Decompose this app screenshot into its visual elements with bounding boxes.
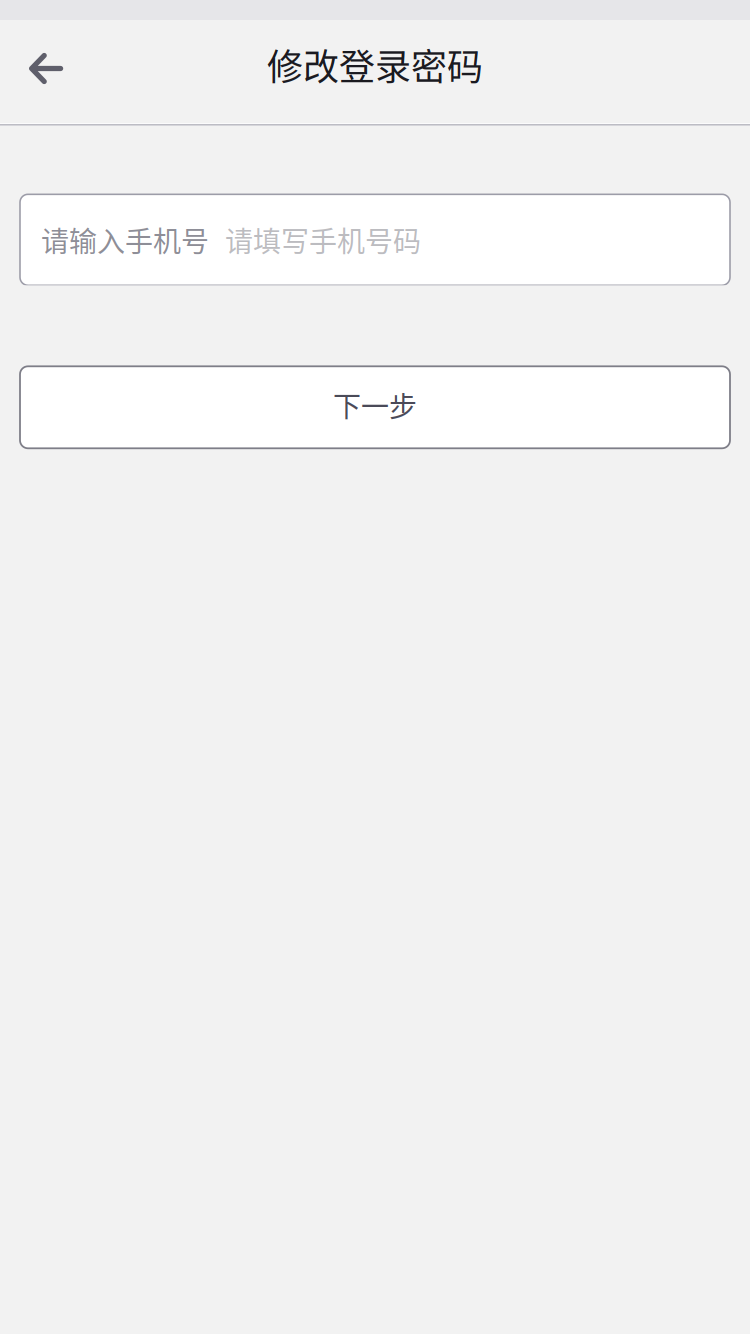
staticText: 下一步 <box>333 384 417 425</box>
staticText: 请输入手机号 <box>41 219 209 260</box>
button[interactable]: Back <box>0 19 91 123</box>
staticText: 请填写手机号码 <box>225 219 421 260</box>
staticText: 修改登录密码 <box>267 38 483 90</box>
button[interactable]: 请输入手机号 <box>0 194 750 285</box>
button[interactable]: 下一步 <box>0 366 750 448</box>
